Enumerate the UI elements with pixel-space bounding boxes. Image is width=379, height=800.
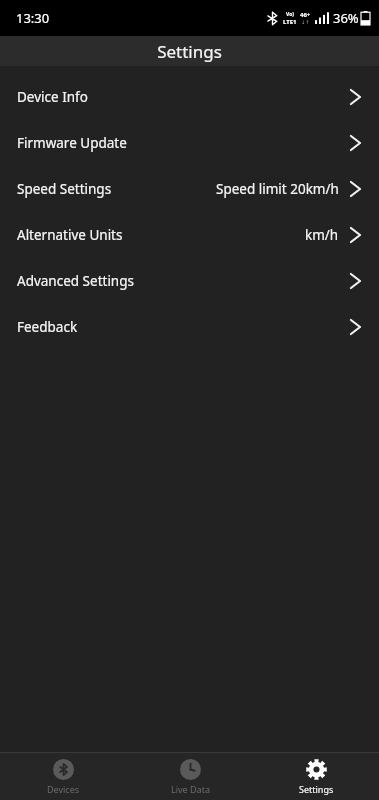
staticText: km/h xyxy=(305,226,339,244)
staticText: Settings xyxy=(299,783,334,795)
staticText: Firmware Update xyxy=(17,134,127,152)
staticText: LTE1 xyxy=(283,18,297,26)
button[interactable]: Device Info xyxy=(0,74,379,120)
staticText: Settings xyxy=(157,40,222,63)
staticText: Speed limit 20km/h xyxy=(216,180,339,198)
staticText: 46+ xyxy=(300,11,311,19)
staticText: Advanced Settings xyxy=(17,272,134,290)
staticText: Speed Settings xyxy=(17,180,112,198)
staticText: Alternative Units xyxy=(17,226,123,244)
staticText: ↓↑ xyxy=(301,19,310,25)
staticText: Feedback xyxy=(17,318,78,336)
staticText: Devices xyxy=(47,783,80,795)
button[interactable]: Devices xyxy=(0,759,127,795)
staticText: 13:30 xyxy=(16,9,50,27)
staticText: Vo) xyxy=(286,11,294,18)
button[interactable]: Feedback xyxy=(0,304,379,350)
button[interactable]: Settings xyxy=(253,759,379,795)
button[interactable]: Advanced Settings xyxy=(0,258,379,304)
button[interactable]: Speed Settings xyxy=(0,166,379,212)
button[interactable]: Alternative Units xyxy=(0,212,379,258)
button[interactable]: Firmware Update xyxy=(0,120,379,166)
staticText: Device Info xyxy=(17,88,88,106)
button[interactable]: Live Data xyxy=(127,759,253,795)
staticText: 36% xyxy=(333,9,359,27)
staticText: Live Data xyxy=(171,783,210,795)
